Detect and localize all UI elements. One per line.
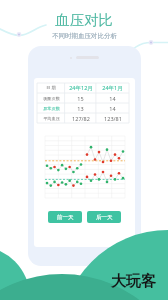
staticText: 平均血压 bbox=[43, 116, 60, 121]
button[interactable]: 前一天 bbox=[48, 211, 82, 223]
staticText: 异常次数 bbox=[43, 106, 60, 111]
staticText: 大玩客 bbox=[111, 272, 156, 291]
staticText: 不同时期血压对比分析 bbox=[52, 32, 117, 40]
staticText: 14 bbox=[109, 105, 116, 112]
staticText: 测量次数 bbox=[43, 96, 60, 101]
staticText: 13 bbox=[77, 105, 84, 112]
staticText: 前一天 bbox=[57, 214, 74, 221]
staticText: 日 期 bbox=[46, 85, 56, 91]
staticText: 14 bbox=[109, 95, 116, 102]
staticText: 123/81 bbox=[104, 115, 122, 122]
staticText: 24年1月 bbox=[102, 84, 123, 92]
staticText: 24年12月 bbox=[69, 84, 93, 92]
staticText: 15 bbox=[77, 95, 84, 102]
staticText: 血压对比 bbox=[55, 11, 113, 29]
staticText: 后一天 bbox=[96, 214, 113, 221]
staticText: 127/82 bbox=[72, 115, 90, 122]
button[interactable]: 后一天 bbox=[87, 211, 121, 223]
